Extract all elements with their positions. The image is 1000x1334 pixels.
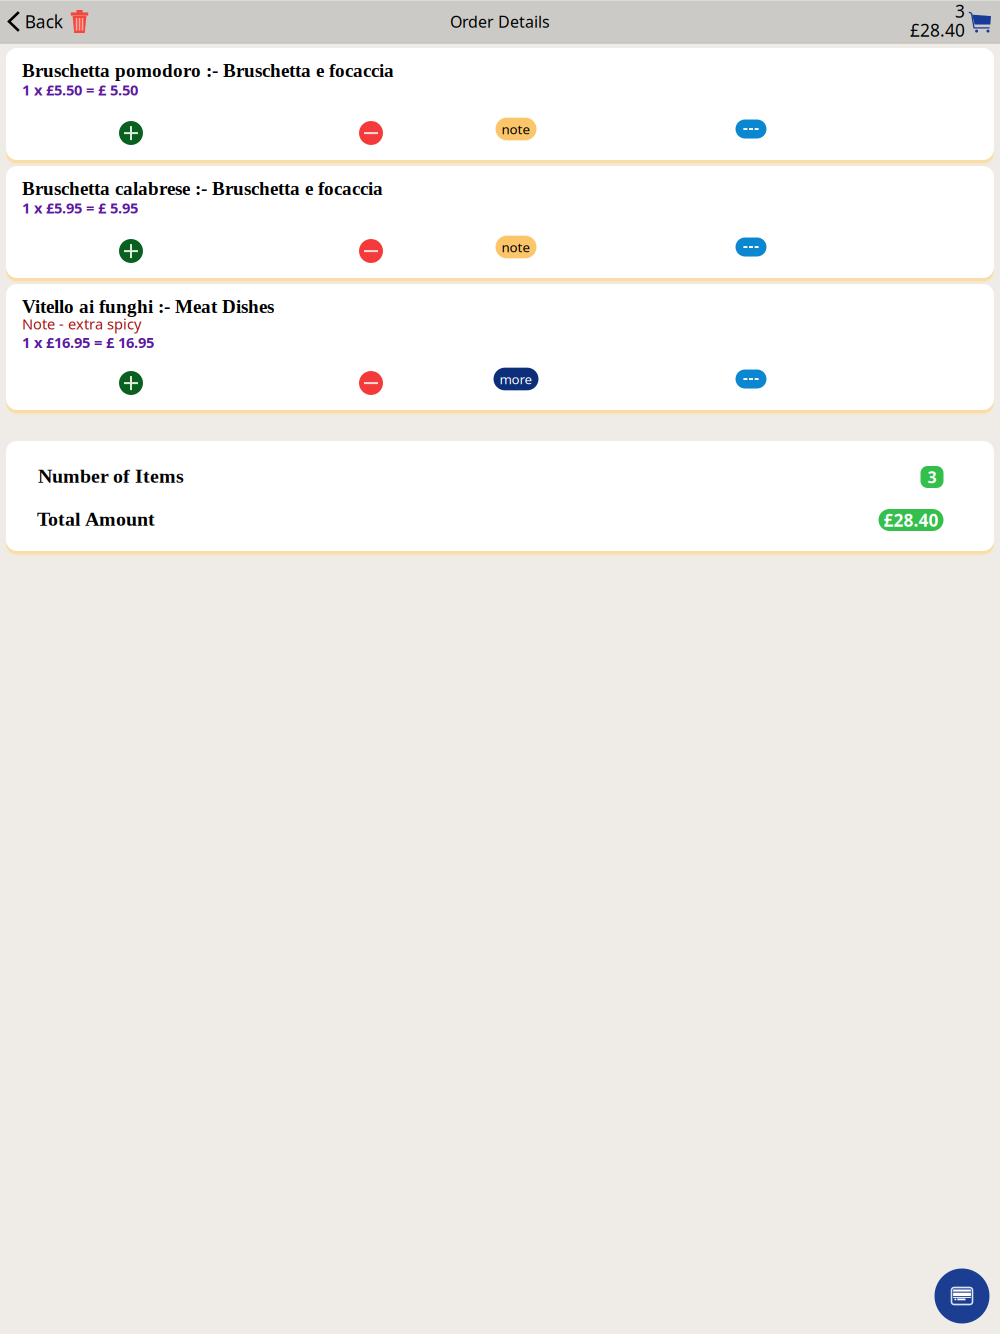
staticText: 3 xyxy=(955,0,965,22)
button[interactable]: Decrease quantity xyxy=(351,363,391,403)
staticText: 1 x £5.50 = £ 5.50 xyxy=(22,80,138,100)
staticText: £28.40 xyxy=(883,508,938,531)
staticText: Number of Items xyxy=(38,465,184,487)
staticText: 1 x £16.95 = £ 16.95 xyxy=(22,333,154,352)
button[interactable]: More options xyxy=(727,364,774,394)
button[interactable]: more xyxy=(487,362,544,396)
button[interactable]: More options xyxy=(727,114,774,144)
button[interactable]: £28.40 xyxy=(878,509,943,531)
staticText: Bruschetta pomodoro :- Bruschetta e foca… xyxy=(22,60,394,81)
button[interactable]: Increase quantity xyxy=(111,113,151,153)
button[interactable]: Decrease quantity xyxy=(351,113,391,153)
staticText: Back xyxy=(25,10,63,33)
staticText: Total Amount xyxy=(37,508,155,530)
button[interactable]: Increase quantity xyxy=(111,363,151,403)
button[interactable]: 3 xyxy=(910,0,1000,42)
staticText: note xyxy=(501,238,530,256)
staticText: £28.40 xyxy=(910,18,965,41)
button[interactable]: Increase quantity xyxy=(111,231,151,271)
staticText: Note - extra spicy xyxy=(22,314,141,334)
staticText: Order Details xyxy=(450,11,550,32)
button[interactable]: Payment xyxy=(934,1268,989,1323)
button[interactable]: Delete order xyxy=(63,1,88,42)
button[interactable]: More options xyxy=(727,232,774,262)
button[interactable]: Decrease quantity xyxy=(351,231,391,271)
button[interactable]: note xyxy=(489,230,542,264)
staticText: note xyxy=(501,120,530,138)
staticText: 3 xyxy=(927,466,936,488)
staticText: Vitello ai funghi :- Meat Dishes xyxy=(22,296,274,317)
button[interactable]: Back xyxy=(0,1,63,42)
button[interactable]: 3 xyxy=(920,466,943,488)
button[interactable]: note xyxy=(489,112,542,146)
staticText: 1 x £5.95 = £ 5.95 xyxy=(22,198,138,218)
staticText: more xyxy=(499,370,532,388)
staticText: Bruschetta calabrese :- Bruschetta e foc… xyxy=(22,178,383,199)
